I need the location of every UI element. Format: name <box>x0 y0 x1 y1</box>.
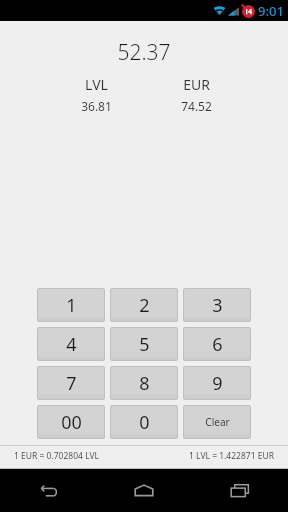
staticText: 74.52 <box>181 98 212 114</box>
button[interactable]: 7 <box>37 366 105 400</box>
button[interactable]: 6 <box>183 327 251 361</box>
staticText: 00 <box>61 410 82 435</box>
staticText: 1 LVL = 1.422871 EUR <box>189 450 274 462</box>
button[interactable]: 9 <box>183 366 251 400</box>
button[interactable]: Back <box>0 469 96 512</box>
staticText: 2 <box>139 293 150 318</box>
staticText: 9 <box>212 371 223 396</box>
staticText: 0 <box>139 410 150 435</box>
button[interactable]: 3 <box>183 288 251 322</box>
button[interactable]: 2 <box>110 288 178 322</box>
button[interactable]: 1 <box>37 288 105 322</box>
staticText: 9:01 <box>258 2 284 20</box>
button[interactable]: Clear <box>183 405 251 439</box>
button[interactable]: 0 <box>110 405 178 439</box>
staticText: 36.81 <box>81 98 112 114</box>
staticText: 1 EUR = 0.702804 LVL <box>14 450 99 462</box>
staticText: LVL <box>85 75 108 94</box>
button[interactable]: 8 <box>110 366 178 400</box>
staticText: 1 <box>66 293 77 318</box>
staticText: 52.37 <box>117 38 171 67</box>
button[interactable]: 00 <box>37 405 105 439</box>
button[interactable]: 5 <box>110 327 178 361</box>
staticText: 6 <box>212 332 223 357</box>
staticText: 3 <box>212 293 223 318</box>
button[interactable]: 4 <box>37 327 105 361</box>
staticText: EUR <box>183 75 210 94</box>
staticText: 4 <box>66 332 77 357</box>
button[interactable]: Home <box>96 469 192 512</box>
staticText: Clear <box>205 415 230 429</box>
staticText: 5 <box>139 332 150 357</box>
staticText: 8 <box>139 371 150 396</box>
button[interactable]: Recent apps <box>192 469 288 512</box>
staticText: 7 <box>66 371 77 396</box>
